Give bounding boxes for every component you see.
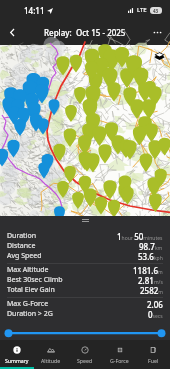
button[interactable]: G-Force: [102, 340, 136, 369]
staticText: Fuel: [148, 357, 159, 364]
staticText: G-Force: [110, 357, 129, 364]
staticText: Duration > 2G: [7, 309, 53, 319]
button[interactable]: Fuel: [136, 340, 170, 369]
button[interactable]: Replay range: [0, 328, 170, 340]
staticText: Max Altitude: [7, 265, 49, 275]
staticText: Total Elev Gain: [7, 285, 55, 295]
staticText: 2.06: [147, 299, 163, 309]
staticText: 1hour 50minutes: [117, 231, 163, 241]
button[interactable]: Speed: [68, 340, 102, 369]
button[interactable]: Altitude: [34, 340, 68, 369]
staticText: 14:11: [24, 5, 45, 16]
button[interactable]: Back: [0, 20, 25, 45]
staticText: Replay: Oct 15 - 2025: [44, 27, 126, 38]
button[interactable]: Map layers: [153, 49, 166, 62]
staticText: Speed: [77, 357, 93, 364]
staticText: 43: [153, 8, 159, 14]
staticText: Max G-Force: [7, 299, 49, 309]
staticText: 1181.6m: [133, 265, 163, 275]
staticText: LTE: [137, 6, 147, 14]
staticText: 0secs: [148, 309, 163, 319]
staticText: 2.81m/s: [138, 275, 163, 285]
staticText: 53.6kph: [138, 251, 163, 261]
button[interactable]: More options: [145, 20, 170, 45]
staticText: Duration: [7, 231, 37, 241]
staticText: Avg Speed: [7, 251, 42, 261]
staticText: 2582m: [140, 285, 163, 295]
staticText: Altitude: [41, 357, 61, 364]
button[interactable]: Summary: [0, 340, 34, 369]
staticText: 98.7km: [139, 241, 163, 251]
staticText: Summary: [5, 357, 29, 364]
staticText: Best 30sec Climb: [7, 275, 63, 285]
staticText: Distance: [7, 241, 36, 251]
